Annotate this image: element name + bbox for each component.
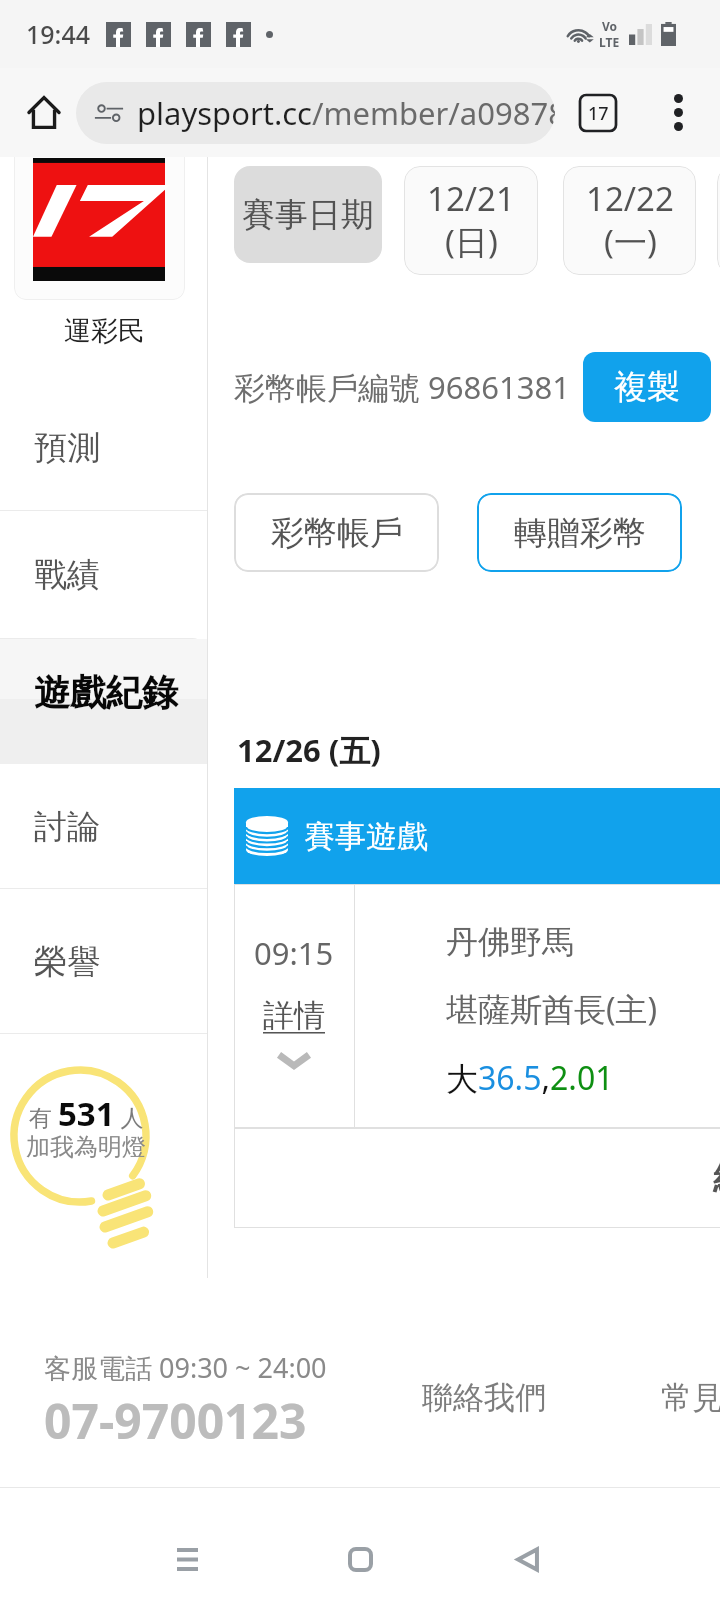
staticText: 常見問題 bbox=[661, 1378, 720, 1417]
staticText: 轉贈彩幣 bbox=[514, 512, 646, 554]
button[interactable]: 12/21 bbox=[404, 166, 538, 275]
button[interactable]: 榮譽 bbox=[0, 889, 208, 1034]
staticText: (日) bbox=[445, 219, 498, 264]
staticText: 丹佛野馬 bbox=[446, 922, 574, 962]
staticText: playsport.cc/member/a09878 bbox=[137, 92, 555, 134]
button[interactable]: Home bbox=[320, 1519, 400, 1599]
button[interactable]: 討論 bbox=[0, 764, 208, 889]
staticText: 客服電話 09:30 ~ 24:00 bbox=[44, 1349, 327, 1386]
button[interactable]: 聯絡我們 bbox=[422, 1378, 546, 1417]
button[interactable]: More options bbox=[648, 68, 708, 157]
button[interactable]: 12/23 bbox=[717, 166, 720, 275]
button[interactable]: 詳情 bbox=[263, 996, 325, 1035]
staticText: 堪薩斯酋長(主) bbox=[446, 987, 658, 1031]
staticText: Vo bbox=[602, 18, 618, 34]
staticText: 遊戲紀錄 bbox=[34, 670, 178, 715]
staticText: 榮譽 bbox=[34, 941, 100, 983]
staticText: LTE bbox=[599, 34, 620, 50]
button[interactable]: 預測 bbox=[0, 384, 208, 511]
staticText: 19:44 bbox=[26, 17, 91, 51]
staticText: 12/22 bbox=[586, 176, 674, 221]
button[interactable]: 彩幣帳戶 bbox=[234, 493, 439, 572]
button[interactable]: 複製 bbox=[583, 352, 711, 422]
staticText: 複製 bbox=[614, 366, 680, 408]
staticText: 彩幣帳戶 bbox=[271, 512, 403, 554]
staticText: 賽事日期 bbox=[242, 194, 374, 236]
button[interactable]: playsport.cc/member/a09878 bbox=[76, 82, 555, 144]
button[interactable]: Back bbox=[487, 1519, 567, 1599]
staticText: 賽事遊戲 bbox=[304, 817, 428, 856]
button[interactable]: Recent apps bbox=[147, 1519, 227, 1599]
staticText: 17 bbox=[588, 101, 609, 126]
staticText: 預測 bbox=[34, 427, 100, 469]
staticText: 彩幣帳戶編號 96861381 bbox=[234, 366, 570, 408]
staticText: 討論 bbox=[34, 806, 100, 848]
staticText: 07-9700123 bbox=[44, 1388, 307, 1453]
staticText: 加我為明燈 bbox=[26, 1132, 146, 1162]
staticText: 有 531 人 bbox=[29, 1091, 144, 1136]
button[interactable]: 賽事日期 bbox=[234, 166, 382, 263]
button[interactable]: Home bbox=[6, 68, 82, 157]
button[interactable]: Tabs bbox=[566, 68, 630, 157]
button[interactable]: 12/22 bbox=[563, 166, 696, 275]
staticText: 結果 bbox=[713, 1157, 720, 1199]
staticText: 運彩民 bbox=[64, 314, 145, 348]
staticText: 聯絡我們 bbox=[422, 1378, 546, 1417]
staticText: 12/26 (五) bbox=[237, 729, 381, 771]
staticText: 12/21 bbox=[427, 176, 515, 221]
button[interactable]: 轉贈彩幣 bbox=[477, 493, 682, 572]
staticText: 詳情 bbox=[263, 996, 325, 1035]
staticText: (一) bbox=[604, 219, 657, 264]
staticText: 大36.5,2.01 bbox=[446, 1056, 614, 1100]
button[interactable]: 常見問題 bbox=[661, 1378, 720, 1417]
staticText: 09:15 bbox=[254, 932, 334, 974]
staticText: 戰績 bbox=[34, 554, 100, 596]
button[interactable]: 戰績 bbox=[0, 511, 208, 639]
